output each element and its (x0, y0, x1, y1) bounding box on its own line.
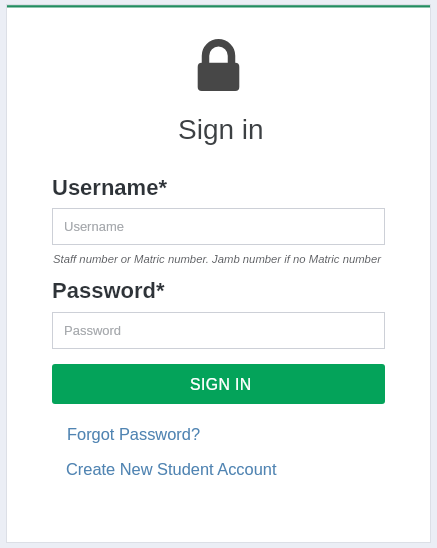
staticText: Create New Student Account (66, 460, 277, 478)
button[interactable]: Password (52, 312, 385, 349)
staticText: Forgot Password? (67, 425, 201, 443)
button[interactable]: SIGN IN (52, 364, 385, 404)
staticText: Username (64, 219, 124, 234)
staticText: Sign in (178, 114, 264, 145)
button[interactable]: Create New Student Account (62, 455, 281, 483)
staticText: Password (64, 323, 122, 338)
staticText: Password* (52, 278, 165, 303)
button[interactable]: Forgot Password? (63, 420, 205, 448)
staticText: Staff number or Matric number. Jamb numb… (53, 253, 381, 266)
other: Lock (197, 39, 240, 91)
staticText: SIGN IN (190, 376, 252, 394)
staticText: Username* (52, 175, 167, 200)
button[interactable]: Username (52, 208, 385, 245)
